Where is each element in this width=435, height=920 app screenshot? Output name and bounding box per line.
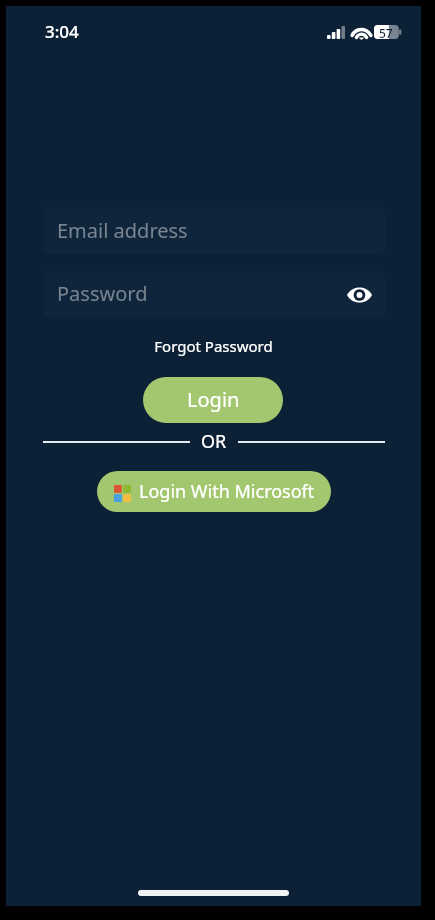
button[interactable]: Password: [44, 271, 385, 317]
staticText: 57: [379, 25, 393, 39]
staticText: OR: [201, 429, 227, 454]
staticText: Login With Microsoft: [139, 479, 315, 504]
staticText: 3:04: [45, 20, 79, 43]
button[interactable]: Show password: [342, 278, 376, 312]
button[interactable]: Forgot Password: [6, 333, 421, 359]
staticText: Email address: [57, 217, 188, 244]
button[interactable]: Email address: [44, 207, 385, 254]
staticText: Login: [187, 386, 240, 413]
staticText: Forgot Password: [154, 336, 273, 356]
button[interactable]: Login: [143, 377, 283, 423]
staticText: Password: [57, 280, 148, 307]
button[interactable]: Login With Microsoft: [97, 471, 331, 512]
